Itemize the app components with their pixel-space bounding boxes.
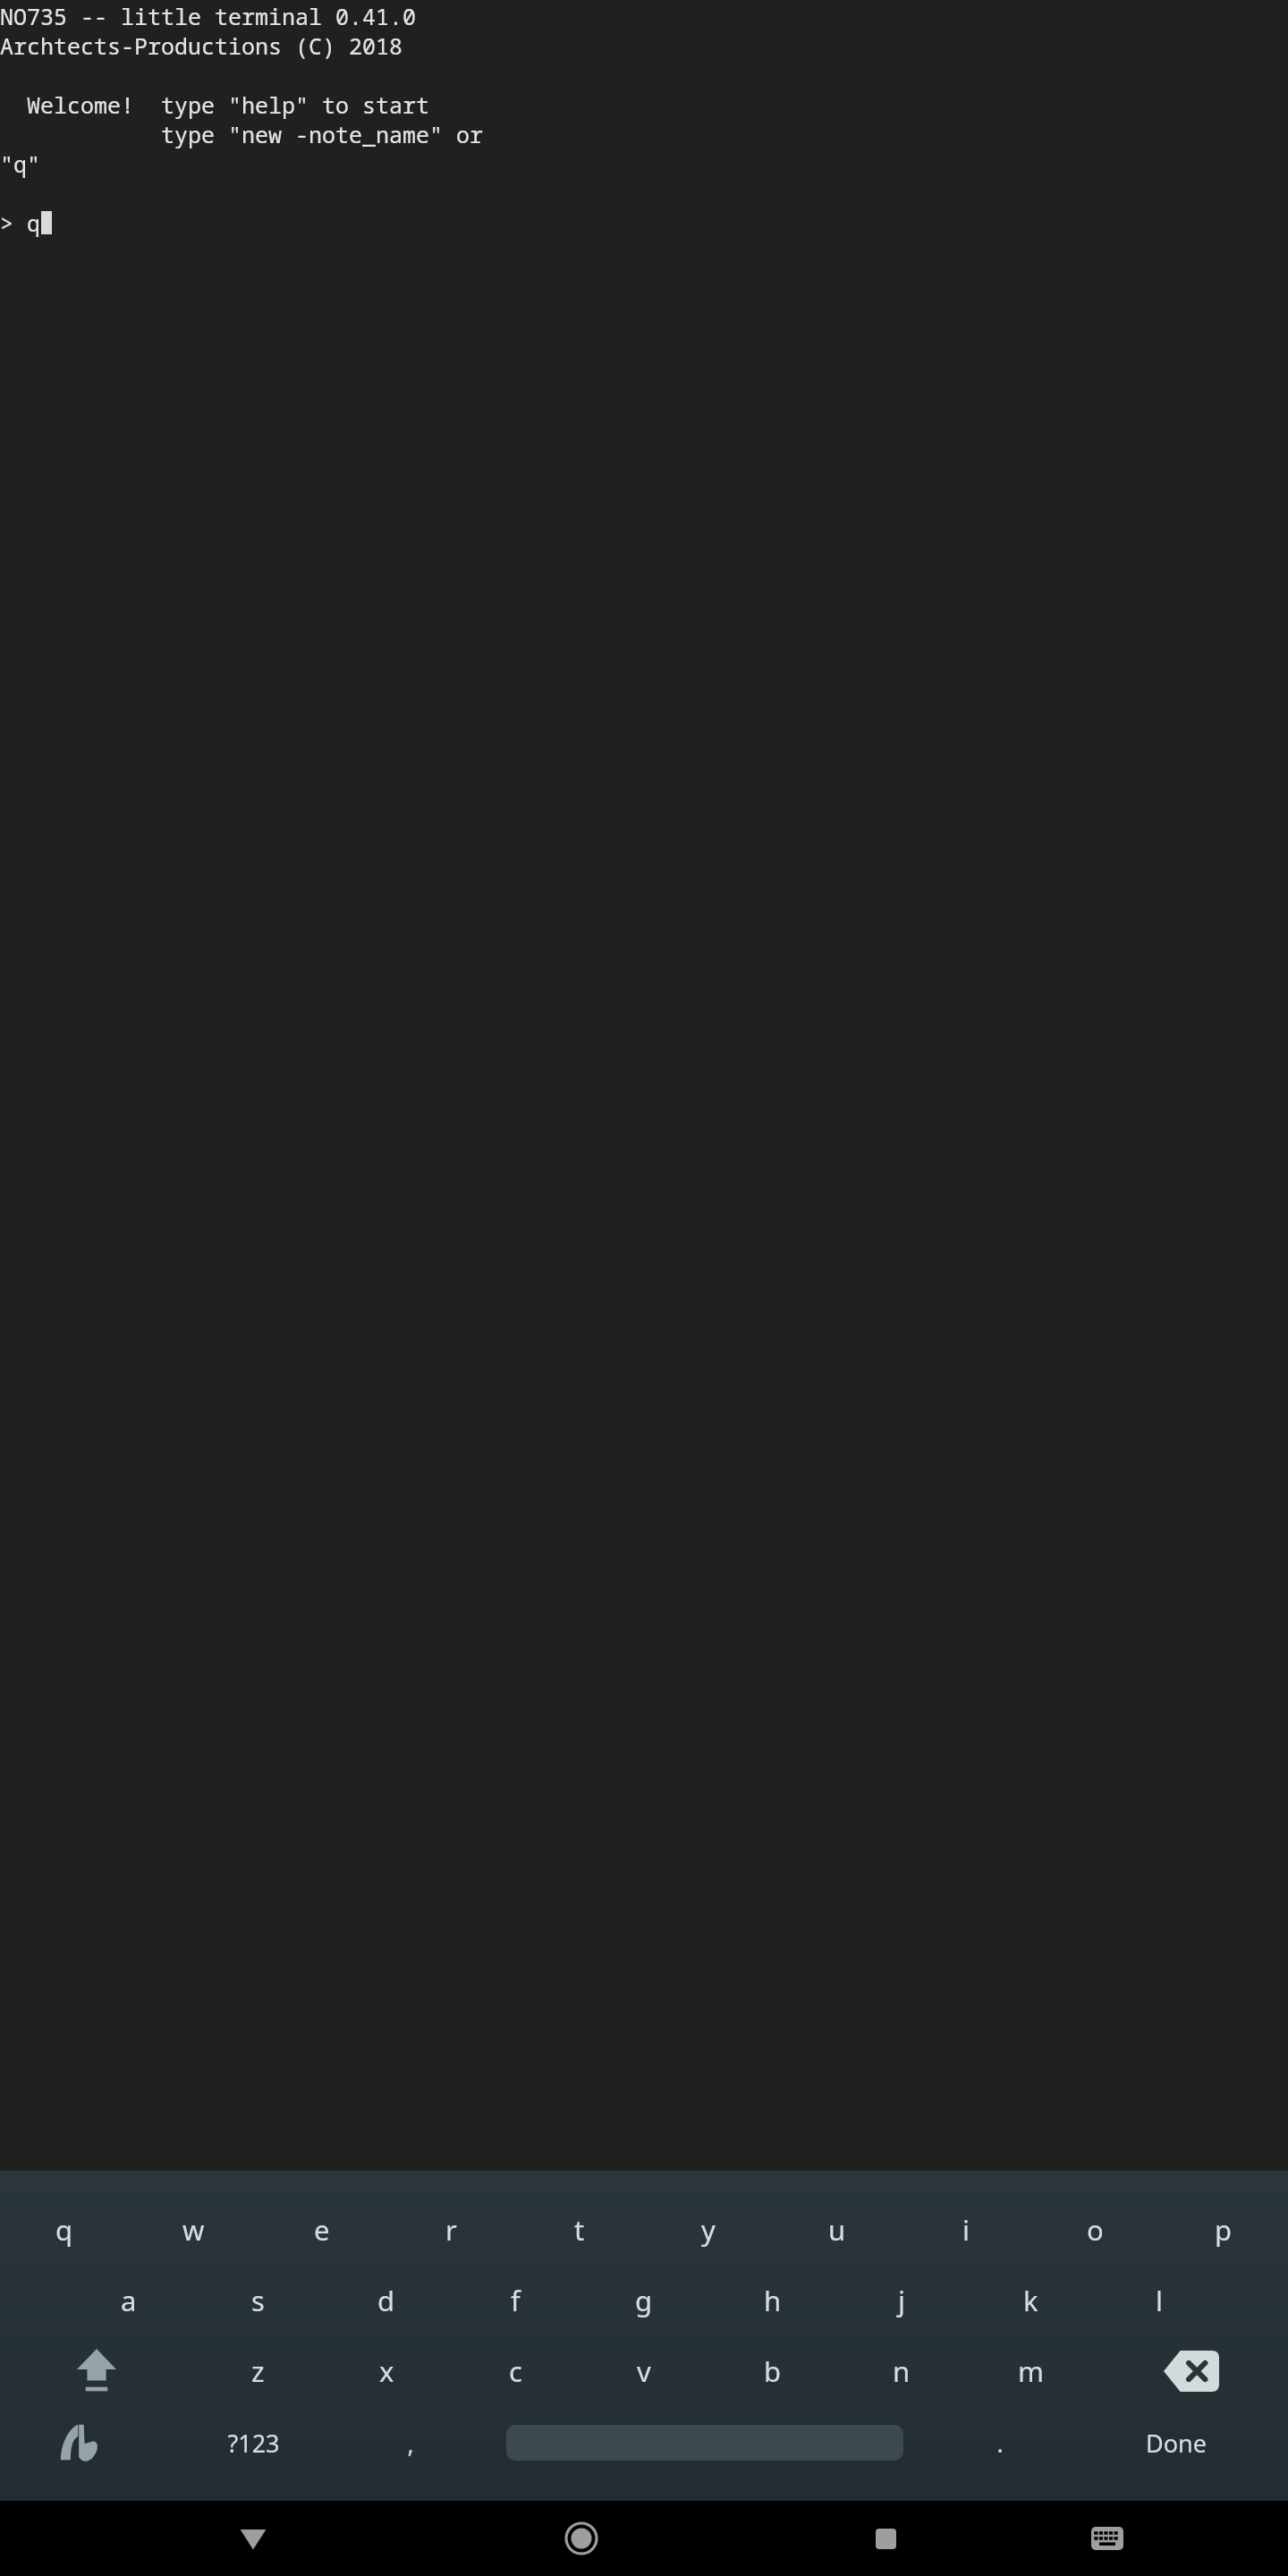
staticText: h <box>764 2282 782 2319</box>
button[interactable]: c <box>451 2335 580 2406</box>
button[interactable]: u <box>773 2194 902 2265</box>
button[interactable]: z <box>193 2335 322 2406</box>
staticText: o <box>1087 2211 1104 2249</box>
staticText: . <box>996 2427 1004 2460</box>
button[interactable]: g <box>580 2265 708 2335</box>
staticText: l <box>1156 2282 1163 2319</box>
staticText: k <box>1023 2282 1038 2319</box>
staticText: type "new -note_name" or <box>0 119 1288 148</box>
button[interactable]: s <box>193 2265 322 2335</box>
button[interactable]: a <box>64 2265 193 2335</box>
staticText: > q <box>0 208 41 238</box>
button[interactable]: v <box>580 2335 708 2406</box>
button[interactable]: f <box>451 2265 580 2335</box>
staticText: i <box>962 2211 970 2249</box>
button[interactable]: t <box>515 2194 644 2265</box>
staticText: z <box>251 2352 265 2390</box>
button[interactable]: Backspace <box>1095 2335 1288 2406</box>
button[interactable]: w <box>129 2194 258 2265</box>
button[interactable]: n <box>837 2335 966 2406</box>
button[interactable]: x <box>322 2335 451 2406</box>
staticText: y <box>701 2211 716 2249</box>
staticText: ?123 <box>227 2427 280 2460</box>
staticText: b <box>764 2352 782 2390</box>
button[interactable]: j <box>837 2265 966 2335</box>
staticText: "q" <box>0 148 1288 178</box>
staticText: u <box>828 2211 846 2249</box>
button[interactable]: NO735 -- little terminal 0.41.0 <box>0 0 1288 2171</box>
button[interactable]: Home <box>491 2501 672 2576</box>
staticText: v <box>637 2352 651 2390</box>
button[interactable]: Emoji and handwriting <box>0 2406 160 2479</box>
button[interactable]: , <box>346 2406 474 2479</box>
button[interactable]: Recent apps <box>795 2501 976 2576</box>
staticText: n <box>893 2352 911 2390</box>
button[interactable]: e <box>258 2194 386 2265</box>
staticText: f <box>511 2282 521 2319</box>
button[interactable]: p <box>1159 2194 1288 2265</box>
button[interactable]: o <box>1030 2194 1159 2265</box>
staticText: x <box>379 2352 394 2390</box>
button[interactable]: d <box>322 2265 451 2335</box>
button[interactable]: l <box>1095 2265 1224 2335</box>
staticText: , <box>407 2427 414 2460</box>
button[interactable]: Space <box>474 2406 936 2479</box>
staticText: c <box>509 2352 522 2390</box>
staticText: q <box>55 2211 73 2249</box>
staticText: g <box>635 2282 653 2319</box>
button[interactable]: r <box>386 2194 515 2265</box>
staticText: a <box>121 2282 137 2319</box>
button[interactable]: m <box>966 2335 1095 2406</box>
button[interactable]: q <box>0 2194 129 2265</box>
staticText: Done <box>1146 2427 1207 2460</box>
staticText: Archtects-Productions (C) 2018 <box>0 30 1288 60</box>
staticText: d <box>377 2282 395 2319</box>
button[interactable]: b <box>708 2335 837 2406</box>
button[interactable]: Done <box>1063 2406 1288 2479</box>
staticText: w <box>182 2211 205 2249</box>
button[interactable]: . <box>936 2406 1063 2479</box>
staticText: r <box>445 2211 457 2249</box>
staticText: p <box>1215 2211 1233 2249</box>
staticText: t <box>574 2211 585 2249</box>
button[interactable]: k <box>966 2265 1095 2335</box>
button[interactable]: y <box>644 2194 773 2265</box>
button[interactable]: i <box>902 2194 1030 2265</box>
button[interactable]: ?123 <box>160 2406 346 2479</box>
staticText: s <box>251 2282 265 2319</box>
button[interactable]: Back <box>163 2501 343 2576</box>
button[interactable]: Shift <box>0 2335 193 2406</box>
staticText: j <box>898 2282 905 2319</box>
staticText: e <box>314 2211 330 2249</box>
button[interactable]: Switch keyboard <box>1017 2501 1198 2576</box>
staticText: Welcome! type "help" to start <box>0 89 1288 119</box>
button[interactable]: h <box>708 2265 837 2335</box>
staticText: NO735 -- little terminal 0.41.0 <box>0 1 1288 30</box>
staticText: m <box>1018 2352 1044 2390</box>
